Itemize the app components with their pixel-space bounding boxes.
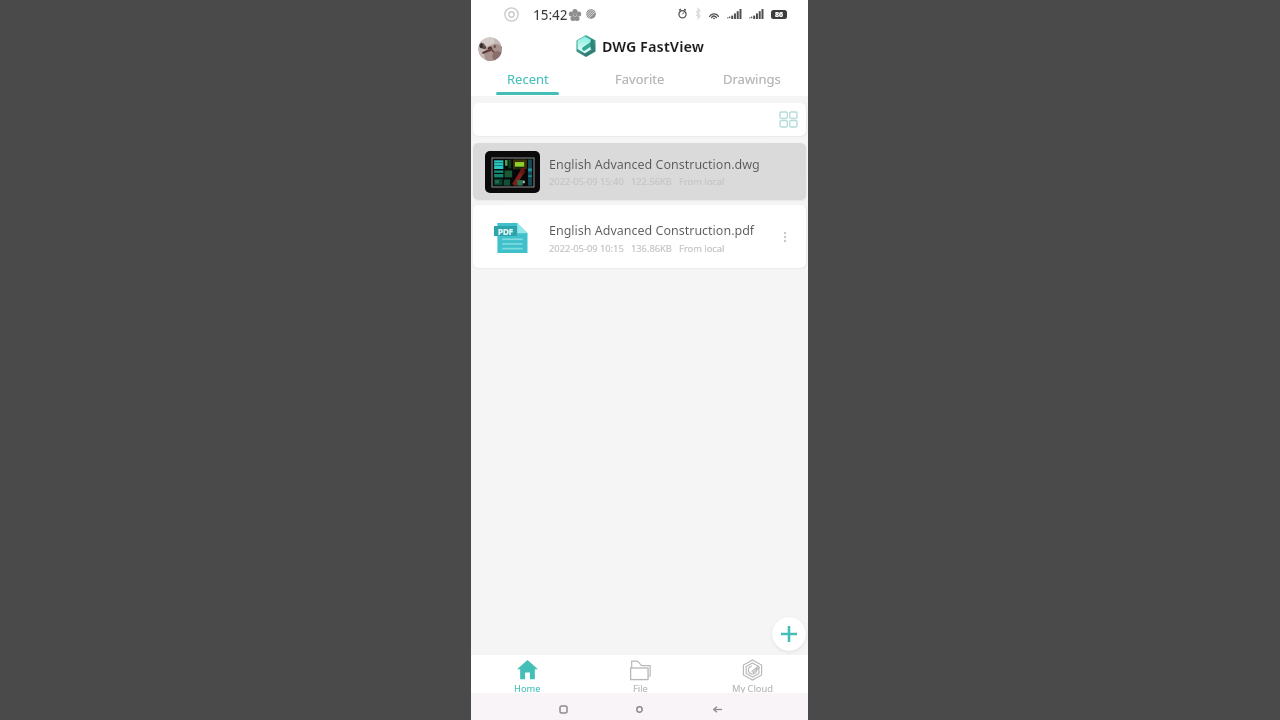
button[interactable]: Back	[710, 702, 725, 717]
staticText: 15:42	[533, 6, 568, 24]
button[interactable]: Add	[772, 617, 806, 651]
staticText: Recent	[507, 70, 549, 88]
staticText: English Advanced Construction.dwg	[549, 156, 760, 173]
staticText: Favorite	[615, 70, 665, 88]
button[interactable]: English Advanced Construction.dwg	[473, 143, 806, 200]
button[interactable]: Home	[632, 702, 647, 717]
staticText: 2022-05-09 10:15 136.86KB From local	[549, 242, 725, 255]
staticText: File	[633, 682, 648, 695]
button[interactable]: Favorite	[584, 64, 696, 96]
button[interactable]: Grid view	[780, 112, 797, 127]
staticText: 86	[775, 10, 784, 19]
button[interactable]: Profile	[478, 37, 502, 61]
button[interactable]: Search drawings	[473, 103, 806, 136]
button[interactable]: Recent apps	[556, 702, 571, 717]
button[interactable]: Home	[471, 655, 584, 693]
staticText: Home	[514, 682, 541, 695]
staticText: DWG FastView	[602, 37, 704, 56]
button[interactable]: Recent	[471, 64, 584, 96]
button[interactable]: File	[584, 655, 696, 693]
button[interactable]: More options	[776, 228, 794, 246]
button[interactable]: My Cloud	[696, 655, 808, 693]
staticText: Drawings	[723, 70, 781, 88]
staticText: English Advanced Construction.pdf	[549, 222, 755, 239]
staticText: My Cloud	[732, 682, 773, 695]
button[interactable]: PDF	[473, 205, 806, 268]
button[interactable]: Drawings	[696, 64, 808, 96]
staticText: 2022-05-09 15:40 122.56KB From local	[549, 175, 725, 188]
staticText: PDF	[498, 226, 514, 236]
